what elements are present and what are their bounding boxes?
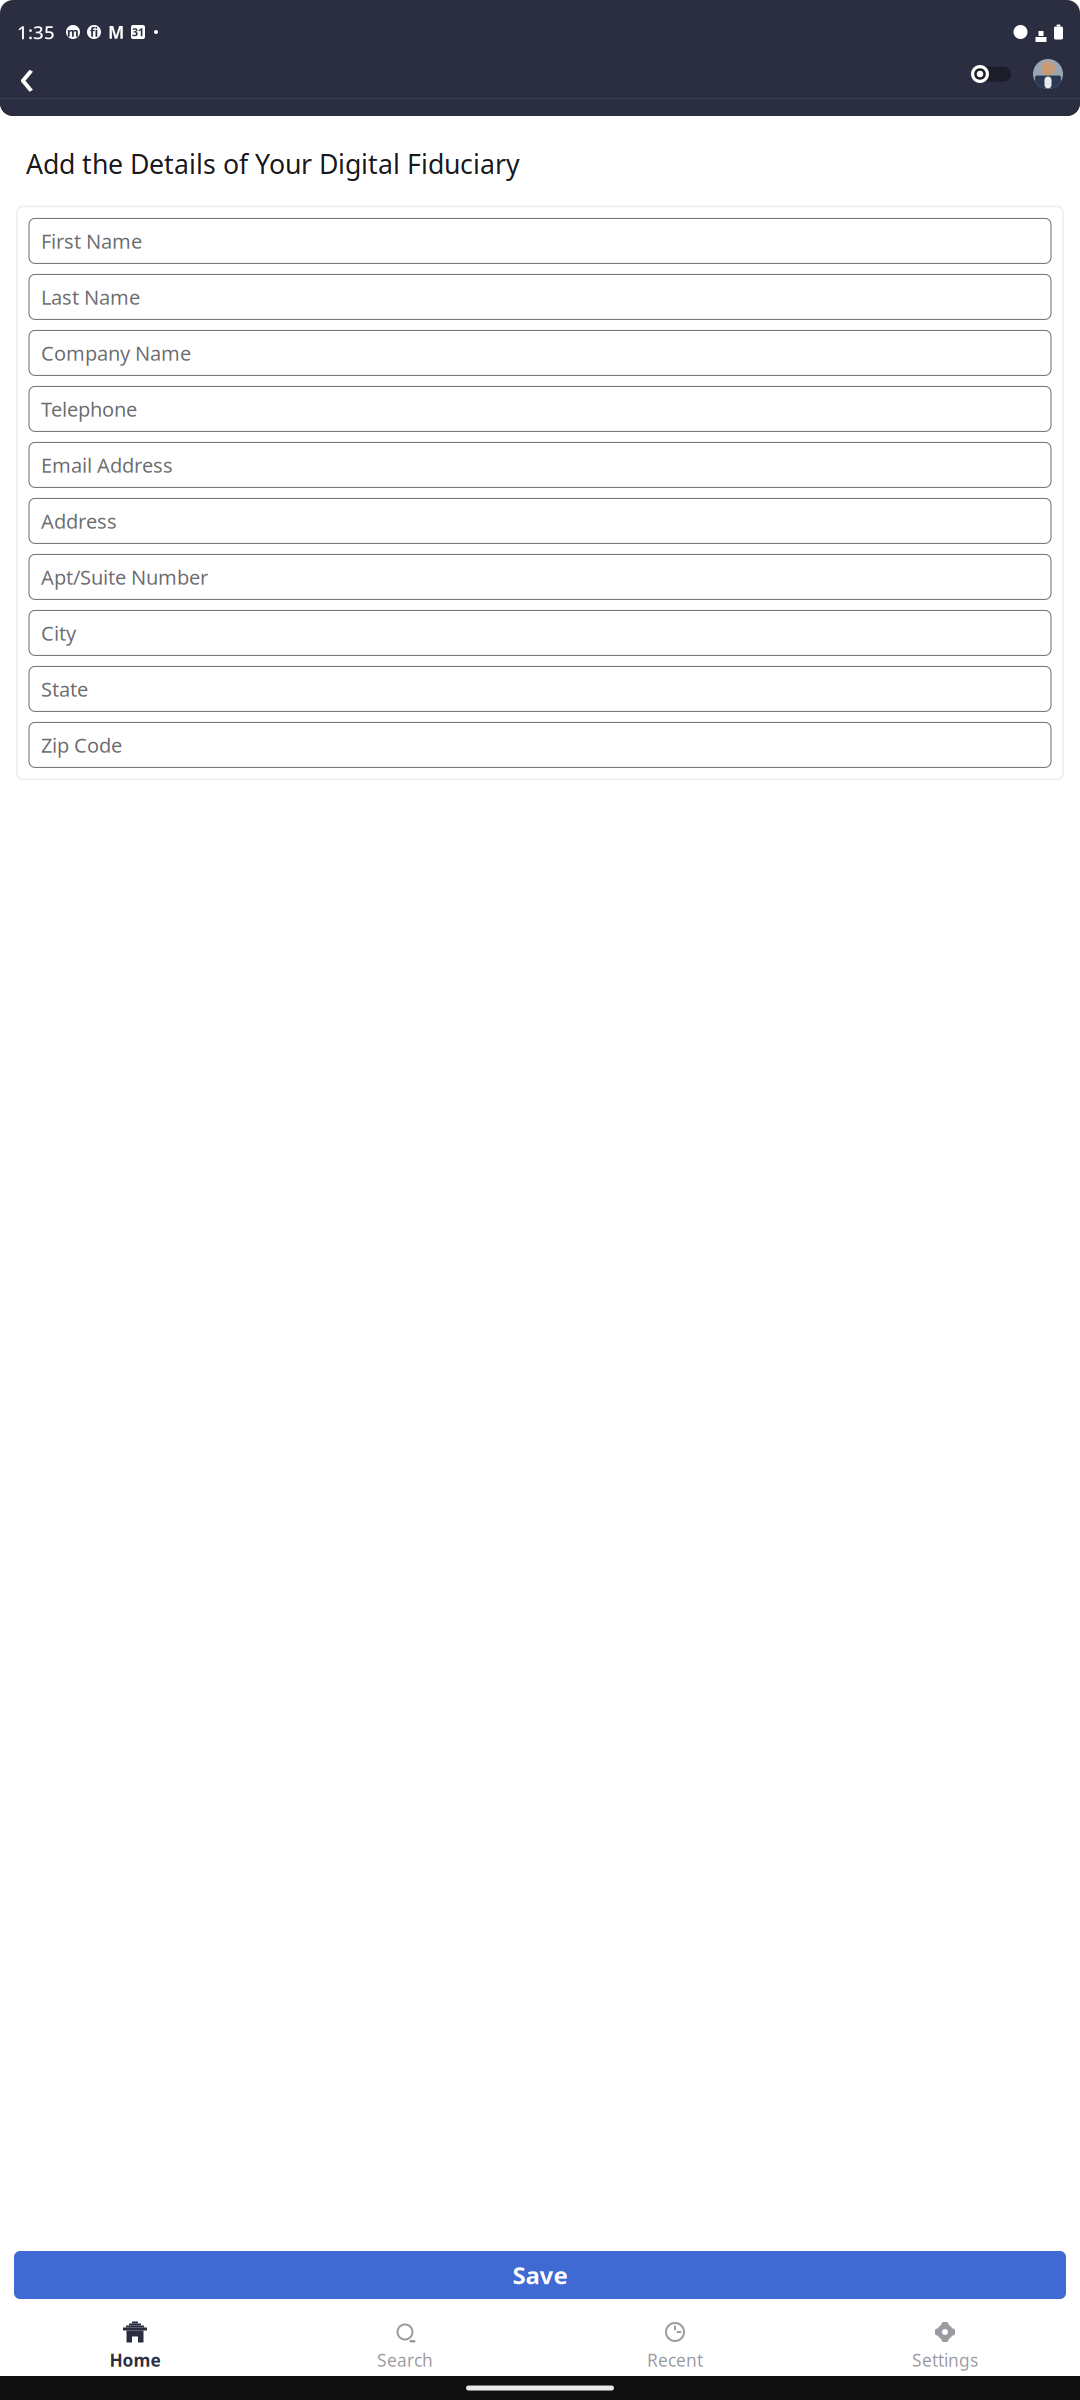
- staticText: City: [41, 620, 76, 646]
- button[interactable]: Recent: [540, 2312, 810, 2379]
- button[interactable]: Back: [4, 51, 50, 97]
- staticText: Apt/Suite Number: [41, 564, 208, 590]
- button[interactable]: Telephone: [29, 386, 1051, 431]
- button[interactable]: Appearance: [963, 52, 1019, 96]
- button[interactable]: Address: [29, 498, 1051, 543]
- button[interactable]: Last Name: [29, 274, 1051, 319]
- button[interactable]: First Name: [29, 218, 1051, 263]
- button[interactable]: City: [29, 610, 1051, 655]
- button[interactable]: State: [29, 666, 1051, 711]
- staticText: fi: [90, 24, 98, 40]
- button[interactable]: Profile: [1019, 51, 1063, 97]
- button[interactable]: Search: [270, 2312, 540, 2379]
- button[interactable]: Settings: [810, 2312, 1080, 2379]
- button[interactable]: Apt/Suite Number: [29, 554, 1051, 599]
- staticText: Recent: [647, 2348, 703, 2371]
- staticText: Last Name: [41, 284, 140, 310]
- button[interactable]: Home: [0, 2312, 270, 2379]
- staticText: Home: [109, 2348, 160, 2371]
- staticText: State: [41, 676, 88, 702]
- staticText: Search: [377, 2348, 433, 2371]
- staticText: Add the Details of Your Digital Fiduciar…: [26, 146, 520, 181]
- staticText: Email Address: [41, 452, 173, 478]
- staticText: Address: [41, 508, 117, 534]
- staticText: M: [108, 20, 124, 43]
- staticText: Zip Code: [41, 732, 122, 758]
- staticText: 31: [132, 25, 144, 39]
- staticText: 1:35: [17, 20, 55, 44]
- staticText: Company Name: [41, 340, 191, 366]
- button[interactable]: Company Name: [29, 330, 1051, 375]
- staticText: Settings: [912, 2348, 978, 2371]
- staticText: ‹: [18, 39, 35, 109]
- staticText: Telephone: [41, 396, 137, 422]
- button[interactable]: Save: [14, 2251, 1066, 2299]
- staticText: m: [67, 24, 79, 40]
- button[interactable]: Zip Code: [29, 722, 1051, 767]
- staticText: First Name: [41, 228, 142, 254]
- button[interactable]: Email Address: [29, 442, 1051, 487]
- staticText: Save: [512, 2259, 567, 2291]
